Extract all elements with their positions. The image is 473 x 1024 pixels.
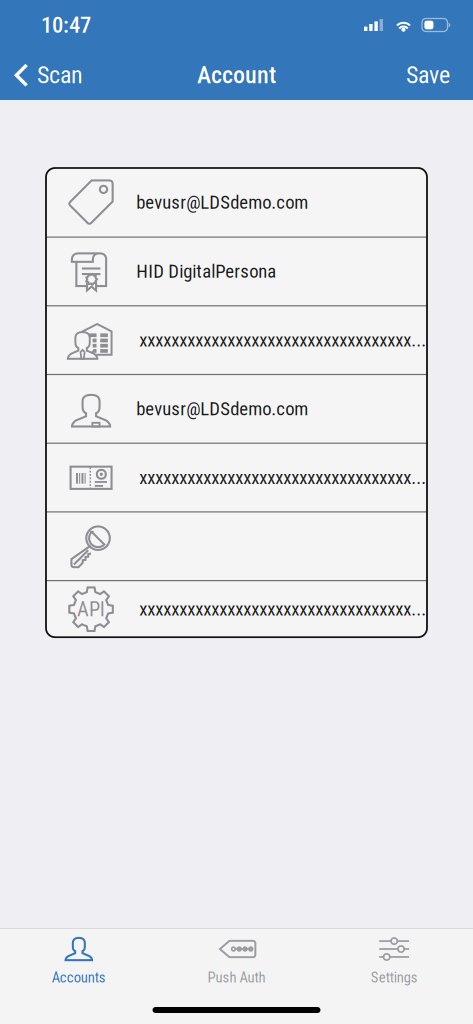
button[interactable] [46,512,427,580]
button[interactable]: Save [392,50,473,100]
staticText: Save [406,61,450,89]
staticText: Settings [371,969,418,986]
button[interactable]: bevusr@LDSdemo.com [46,168,427,236]
staticText: Push Auth [207,969,265,986]
staticText: xxxxxxxxxxxxxxxxxxxxxxxxxxxxxxxxxx... [139,467,426,488]
staticText: API [78,598,104,620]
staticText: Account [197,61,276,89]
staticText: xxxxxxxxxxxxxxxxxxxxxxxxxxxxxxxxxx... [139,598,426,620]
staticText: 10:47 [41,12,91,38]
button[interactable]: Scan [0,50,95,100]
staticText: HID DigitalPersona [136,260,276,282]
staticText: Accounts [52,969,106,986]
button[interactable]: Accounts [0,929,158,991]
button[interactable]: Push Auth [158,929,315,991]
button[interactable]: API [46,581,427,637]
button[interactable]: HID DigitalPersona [46,238,427,305]
button[interactable]: xxxxxxxxxxxxxxxxxxxxxxxxxxxxxxxxxx... [46,306,427,374]
staticText: bevusr@LDSdemo.com [136,191,308,213]
button[interactable]: bevusr@LDSdemo.com [46,375,427,443]
button[interactable]: xxxxxxxxxxxxxxxxxxxxxxxxxxxxxxxxxx... [46,444,427,511]
staticText: Scan [37,61,83,89]
staticText: xxxxxxxxxxxxxxxxxxxxxxxxxxxxxxxxxx... [139,329,426,351]
button[interactable]: Settings [315,929,473,991]
staticText: bevusr@LDSdemo.com [136,398,308,420]
